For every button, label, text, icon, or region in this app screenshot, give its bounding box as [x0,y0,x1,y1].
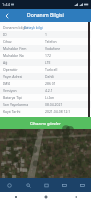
staticText: 286 01 [45,81,56,86]
staticText: Kayıt Tarihi [3,109,21,114]
staticText: Detaylı bilgi [24,25,43,30]
button[interactable]: Home [31,192,61,202]
button[interactable]: IMSI [0,80,91,87]
button[interactable]: Devices [37,178,55,192]
staticText: Batarya Tipi [3,95,22,100]
staticText: 172 [45,53,51,58]
staticText: 08.04.2021 [45,102,63,107]
button[interactable]: Cihaz [0,38,91,45]
button[interactable]: Muhabbe No [0,52,91,59]
staticText: Cihaz [3,39,12,44]
button[interactable]: Son Yayınlanma [0,101,91,108]
staticText: LTE [45,60,51,65]
button[interactable]: Ağ [0,59,91,66]
staticText: Muhabbe Firm [3,46,27,51]
button[interactable]: More [73,178,91,192]
staticText: Yayın Adresi [3,74,23,79]
button[interactable]: Versiyon [0,87,91,94]
staticText: 4.2.1 [45,88,53,93]
staticText: Muhabbe No [3,53,24,58]
button[interactable]: Muhabbe Firm [0,45,91,52]
staticText: Donanım bilgisi [3,25,28,30]
button[interactable]: Home [0,178,19,192]
button[interactable]: Operatör [0,66,91,73]
button[interactable]: Back [61,192,91,202]
staticText: Operatör [3,67,18,72]
staticText: Telefon [45,39,57,44]
staticText: Li-Ion [45,95,55,100]
button[interactable]: Donanım bilgisi [0,24,91,31]
staticText: Dahili [45,74,55,79]
button[interactable]: Back [0,9,13,22]
staticText: Cihazımı gönder [30,121,61,126]
staticText: 1:44 [2,2,10,7]
staticText: 2021-04-08 12:1 [45,109,71,114]
staticText: Turkcell [45,67,58,72]
button[interactable]: Yayın Adresi [0,73,91,80]
staticText: 1 [45,32,47,37]
button[interactable]: Batarya Tipi [0,94,91,101]
button[interactable]: Kayıt Tarihi [0,108,91,115]
button[interactable]: ID [0,31,91,38]
staticText: Ağ [3,60,8,65]
button[interactable]: Recents [0,192,31,202]
staticText: Son Yayınlanma [3,102,29,107]
button[interactable]: Search [19,178,37,192]
button[interactable]: Alerts [55,178,73,192]
staticText: Versiyon [3,88,17,93]
button[interactable]: Cihazımı gönder [0,117,91,129]
staticText: Donanım Bilgisi [27,12,64,19]
staticText: ID [3,32,7,37]
staticText: IMSI [3,81,11,86]
staticText: Vodafone [45,46,61,51]
